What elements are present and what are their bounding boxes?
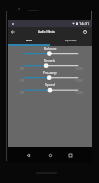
- button[interactable]: Home: [46, 151, 55, 160]
- staticText: Audio Effects: [38, 30, 55, 34]
- button[interactable]: Balance: [18, 46, 82, 57]
- staticText: Reverb: [44, 58, 56, 63]
- staticText: Balance: [44, 46, 57, 51]
- button[interactable]: BASIC: [8, 37, 50, 44]
- button[interactable]: Power toggle: [80, 27, 90, 37]
- staticText: Pre-amp: [43, 70, 57, 75]
- staticText: 0%: [20, 67, 25, 71]
- button[interactable]: Reverb: [18, 58, 82, 69]
- staticText: 100%: [75, 79, 84, 83]
- button[interactable]: Recent apps: [66, 151, 75, 160]
- staticText: 100%: [75, 91, 84, 95]
- button[interactable]: Speed: [18, 82, 82, 93]
- button[interactable]: Back: [24, 151, 33, 160]
- staticText: 0%: [20, 79, 25, 83]
- staticText: BASIC: [26, 39, 32, 42]
- button[interactable]: EQUALIZER: [50, 37, 92, 44]
- staticText: EQUALIZER: [65, 39, 77, 42]
- staticText: 100%: [75, 67, 84, 71]
- button[interactable]: Pre-amp: [18, 70, 82, 81]
- staticText: Speed: [45, 82, 55, 87]
- button[interactable]: Navigate up: [8, 27, 18, 37]
- staticText: 0%: [20, 91, 25, 95]
- staticText: 14:31: [79, 21, 90, 26]
